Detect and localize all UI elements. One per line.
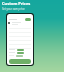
staticText: Set your own price	[2, 7, 25, 11]
button[interactable]: Add	[25, 18, 31, 21]
button[interactable]: Price option 1	[17, 49, 24, 51]
staticText: Custom Prices	[2, 1, 31, 6]
button[interactable]: Price option 3	[16, 55, 23, 57]
button[interactable]	[9, 59, 31, 64]
button[interactable]: Price option 2	[17, 52, 24, 54]
